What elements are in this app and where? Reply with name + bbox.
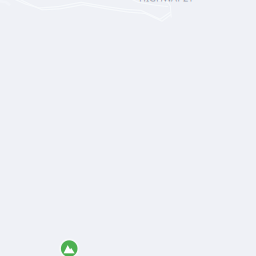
staticText: HIGHWAY 21 — [139, 0, 193, 4]
button[interactable]: Park — [58, 238, 80, 256]
